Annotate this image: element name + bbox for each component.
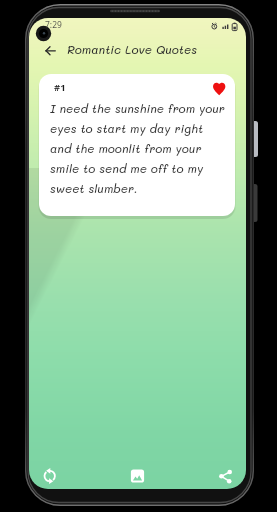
staticText: I need the sunshine from your eyes to st… xyxy=(50,101,225,196)
staticText: #1 xyxy=(54,81,66,94)
button[interactable]: #1 xyxy=(39,74,235,216)
button[interactable] xyxy=(37,463,63,489)
staticText: Romantic Love Quotes xyxy=(67,42,198,57)
button[interactable] xyxy=(125,463,151,489)
button[interactable] xyxy=(213,463,239,489)
button[interactable] xyxy=(211,81,227,96)
staticText: 7:29 xyxy=(45,19,62,31)
button[interactable] xyxy=(37,42,65,60)
